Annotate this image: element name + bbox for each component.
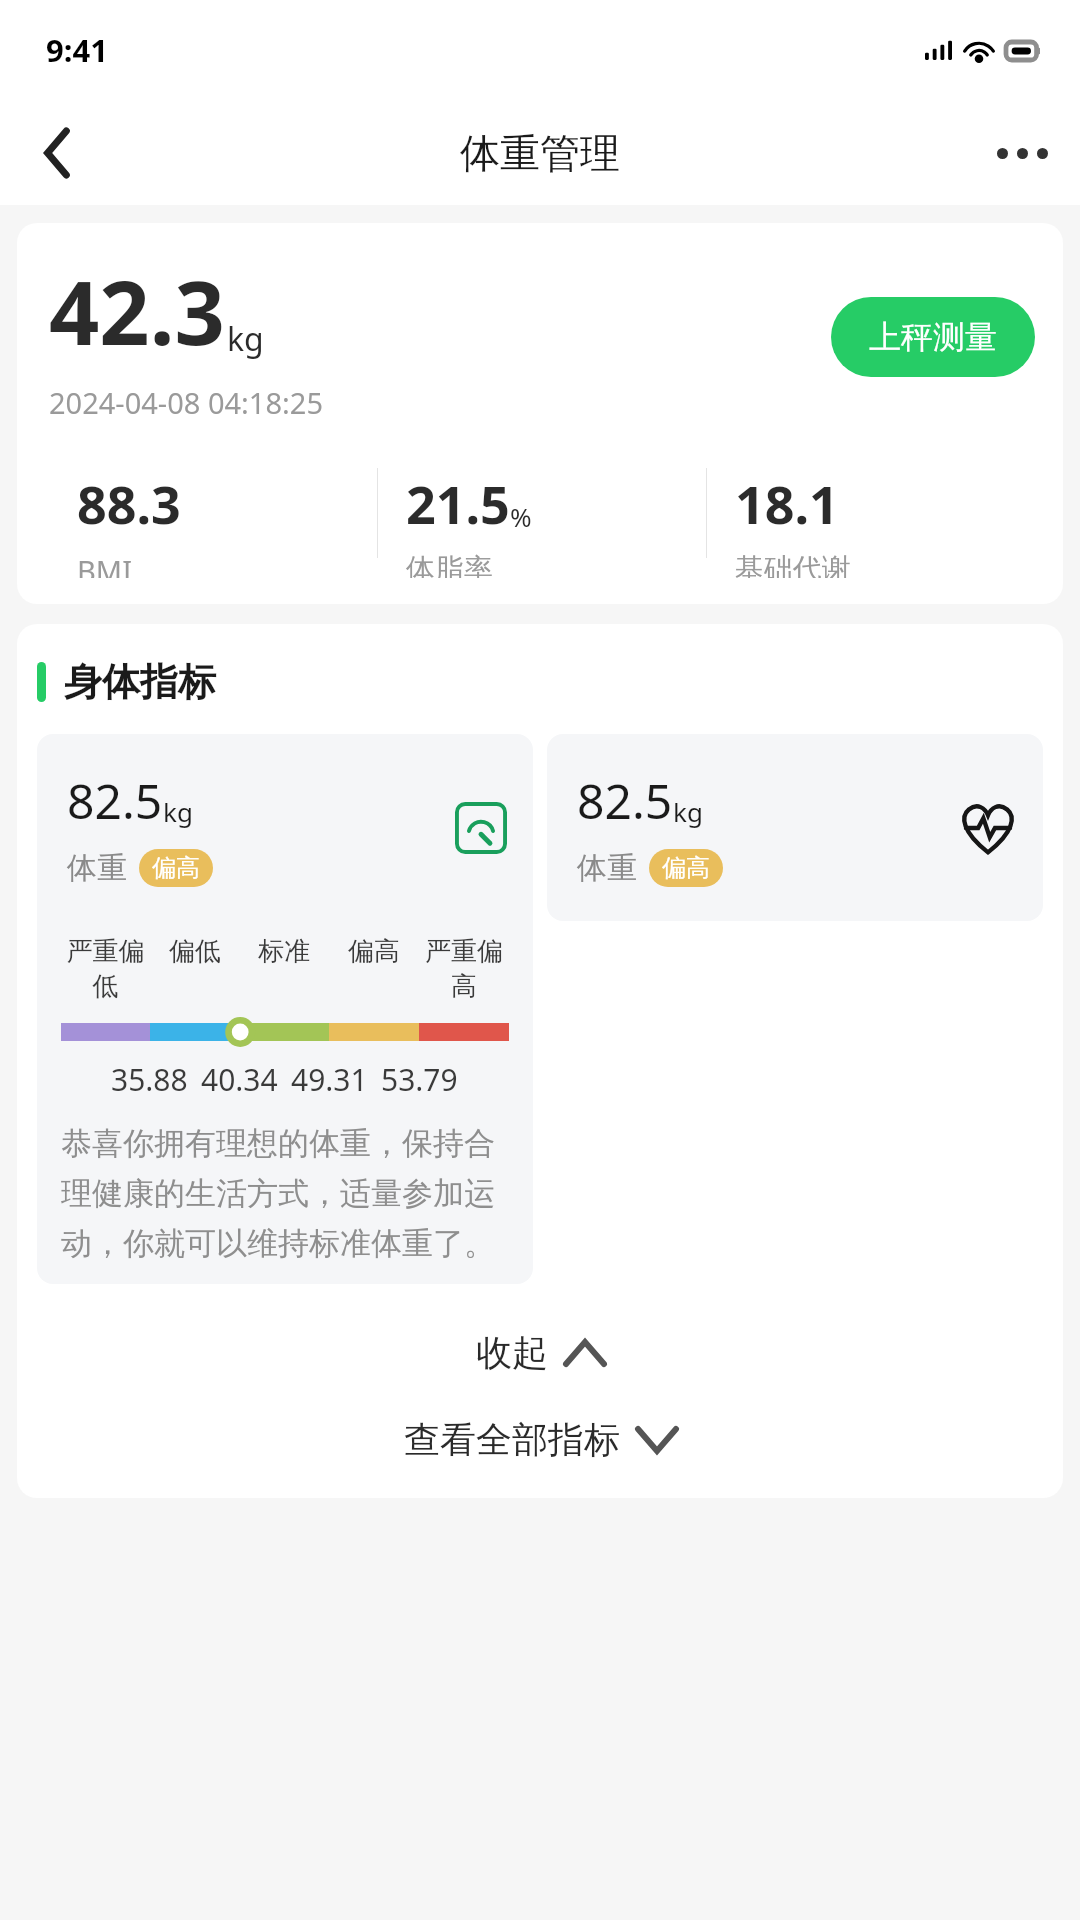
staticText: 偏低 xyxy=(169,935,221,968)
button[interactable]: 82.5 xyxy=(547,734,1043,921)
staticText: 2024-04-08 04:18:25 xyxy=(49,383,323,422)
staticText: 18.1 xyxy=(735,468,839,539)
staticText: kg xyxy=(163,794,193,829)
staticText: 严重偏低 xyxy=(61,935,150,1003)
staticText: BMI xyxy=(77,551,132,578)
staticText: 偏高 xyxy=(348,935,400,968)
button[interactable]: 上秤测量 xyxy=(831,297,1035,377)
staticText: 查看全部指标 xyxy=(404,1417,620,1462)
staticText: 偏高 xyxy=(152,853,200,883)
button[interactable]: 查看全部指标 xyxy=(17,1411,1063,1468)
staticText: 收起 xyxy=(476,1330,548,1375)
staticText: 体重管理 xyxy=(460,128,620,178)
staticText: 40.34 xyxy=(201,1059,278,1100)
staticText: 标准 xyxy=(258,935,310,968)
staticText: 上秤测量 xyxy=(869,317,997,357)
staticText: kg xyxy=(673,794,703,829)
button[interactable]: 收起 xyxy=(17,1324,1063,1381)
staticText: 偏高 xyxy=(662,853,710,883)
staticText: 82.5 xyxy=(577,768,673,833)
staticText: kg xyxy=(227,317,264,361)
staticText: 21.5 xyxy=(406,468,510,539)
staticText: 88.3 xyxy=(77,468,181,539)
button[interactable]: 82.5 xyxy=(37,734,533,1284)
staticText: 恭喜你拥有理想的体重，保持合理健康的生活方式，适量参加运动，你就可以维持标准体重… xyxy=(61,1124,509,1264)
staticText: 身体指标 xyxy=(64,658,216,706)
staticText: 体重 xyxy=(67,849,127,887)
staticText: 42.3 xyxy=(49,251,225,371)
staticText: 82.5 xyxy=(67,768,163,833)
staticText: % xyxy=(510,499,532,534)
staticText: 53.79 xyxy=(381,1059,458,1100)
button[interactable]: More options xyxy=(986,117,1058,189)
button[interactable]: Back xyxy=(22,117,94,189)
staticText: 体脂率 xyxy=(406,551,493,578)
staticText: 严重偏高 xyxy=(419,935,509,1003)
staticText: 35.88 xyxy=(111,1059,188,1100)
staticText: 基础代谢 xyxy=(735,551,851,578)
staticText: 49.31 xyxy=(291,1059,368,1100)
staticText: 9:41 xyxy=(46,29,108,71)
staticText: 体重 xyxy=(577,849,637,887)
